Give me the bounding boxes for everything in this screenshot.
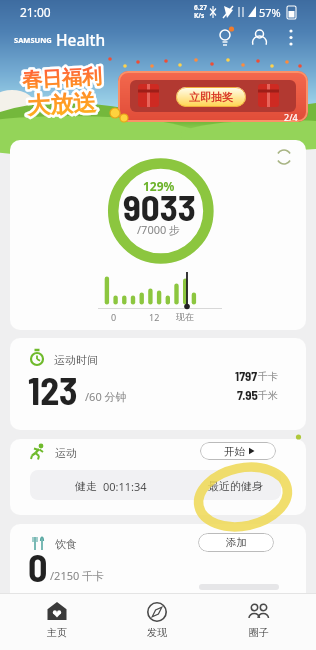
button[interactable] <box>118 71 308 122</box>
staticText: SAMSUNG <box>14 35 52 45</box>
button[interactable]: 圈子 <box>219 595 299 647</box>
staticText: 57% <box>259 5 281 20</box>
staticText: Health <box>56 29 106 50</box>
staticText: 春日福利 <box>21 64 103 93</box>
button[interactable]: 发现 <box>117 595 197 647</box>
button[interactable]: 主页 <box>17 595 97 647</box>
staticText: 大放送 <box>26 88 97 121</box>
staticText: 最近的健身 <box>208 479 263 493</box>
staticText: 发现 <box>147 626 167 639</box>
button[interactable]: 添加 <box>198 533 274 552</box>
staticText: /60 分钟 <box>85 389 127 404</box>
staticText: 现在 <box>176 311 194 322</box>
staticText: 开始 <box>224 445 245 458</box>
staticText: 千米 <box>258 389 278 402</box>
button[interactable]: 运动 <box>10 439 306 515</box>
staticText: 主页 <box>47 626 67 639</box>
staticText: 饮食 <box>55 537 77 551</box>
staticText: 运动时间 <box>54 353 98 367</box>
staticText: 立即抽奖 <box>189 90 233 104</box>
staticText: 21:00 <box>20 4 51 20</box>
staticText: 129% <box>143 178 175 194</box>
staticText: 123 <box>28 367 78 413</box>
staticText: 0 <box>111 311 117 323</box>
button[interactable]: 健走 <box>30 470 281 500</box>
staticText: 春日福利 <box>21 64 103 93</box>
button[interactable]: 立即抽奖 <box>176 87 246 107</box>
staticText: 运动 <box>55 446 77 460</box>
staticText: 9033 <box>123 184 196 228</box>
button[interactable]: 129% <box>10 140 306 330</box>
staticText: /2150 千卡 <box>50 568 105 583</box>
staticText: /7000 步 <box>137 222 181 237</box>
button[interactable]: 运动时间 <box>10 338 306 430</box>
staticText: 健走 <box>75 479 97 493</box>
staticText: K/s <box>194 11 205 20</box>
button[interactable]: 饮食 <box>10 524 306 593</box>
staticText: 1797 <box>235 368 258 384</box>
staticText: 圈子 <box>249 626 269 639</box>
staticText: 千卡 <box>258 370 278 383</box>
staticText: 6.27 <box>194 3 207 12</box>
staticText: 12 <box>149 311 160 323</box>
staticText: 0 <box>28 544 48 590</box>
staticText: 添加 <box>226 536 247 549</box>
staticText: 7.95 <box>237 387 258 403</box>
staticText: 00:11:34 <box>103 479 147 494</box>
staticText: 大放送 <box>26 88 97 121</box>
staticText: 2/4 <box>284 111 298 123</box>
button[interactable]: 开始 <box>200 442 276 460</box>
